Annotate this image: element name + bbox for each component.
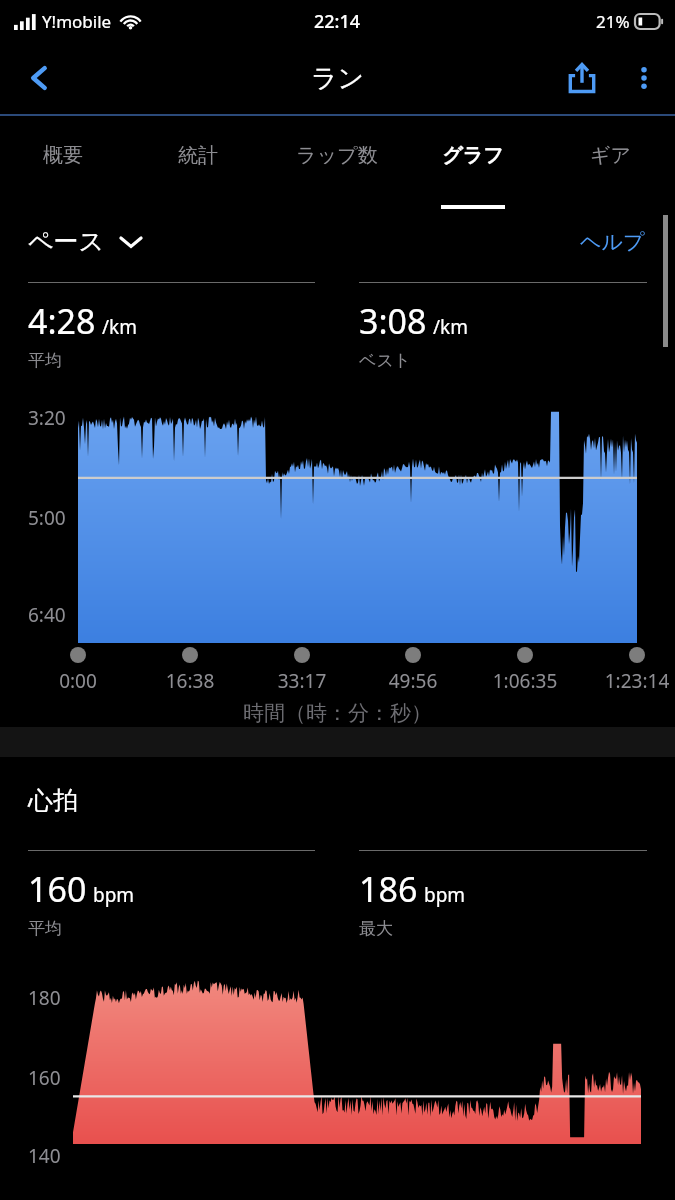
staticText: 心拍	[28, 785, 78, 816]
staticText: 186	[359, 866, 418, 912]
staticText: ラップ数	[296, 143, 378, 168]
staticText: 統計	[178, 143, 218, 168]
staticText: グラフ	[442, 143, 504, 168]
staticText: 22:14	[314, 9, 361, 34]
button[interactable]: ラップ数	[275, 116, 399, 212]
staticText: ベスト	[359, 350, 412, 371]
staticText: 33:17	[242, 668, 362, 694]
staticText: 最大	[359, 918, 393, 939]
staticText: 平均	[28, 918, 62, 939]
staticText: 49:56	[353, 668, 473, 694]
staticText: 0:00	[18, 668, 138, 694]
button[interactable]: More options	[613, 47, 675, 109]
button[interactable]: グラフ	[411, 116, 535, 212]
staticText: 1:23:14	[577, 668, 675, 694]
staticText: 5:00	[28, 505, 66, 531]
staticText: /km	[433, 314, 468, 340]
staticText: 6:40	[28, 602, 66, 628]
button[interactable]: 概要	[1, 116, 125, 212]
staticText: 3:08	[359, 298, 427, 344]
staticText: bpm	[93, 882, 135, 908]
button[interactable]: ギア	[548, 116, 672, 212]
staticText: ペース	[28, 226, 105, 257]
staticText: ヘルプ	[580, 229, 645, 255]
button[interactable]: 統計	[136, 116, 260, 212]
staticText: Y!mobile	[42, 10, 112, 33]
staticText: 3:20	[28, 405, 66, 431]
staticText: 160	[28, 1065, 61, 1091]
staticText: 概要	[43, 143, 83, 168]
staticText: 180	[28, 985, 61, 1011]
button[interactable]: Back	[8, 46, 72, 110]
button[interactable]: Share	[551, 47, 613, 109]
staticText: 平均	[28, 350, 62, 371]
staticText: ギア	[590, 143, 631, 168]
staticText: 16:38	[130, 668, 250, 694]
staticText: 4:28	[28, 298, 96, 344]
button[interactable]: ヘルプ	[580, 229, 645, 255]
staticText: 21%	[596, 10, 630, 33]
staticText: bpm	[424, 882, 466, 908]
button[interactable]: ペース	[28, 226, 143, 257]
staticText: 160	[28, 866, 87, 912]
staticText: /km	[102, 314, 137, 340]
staticText: 1:06:35	[465, 668, 585, 694]
staticText: 時間（時：分：秒）	[243, 700, 432, 726]
staticText: 140	[28, 1143, 61, 1169]
staticText: ラン	[311, 62, 365, 95]
